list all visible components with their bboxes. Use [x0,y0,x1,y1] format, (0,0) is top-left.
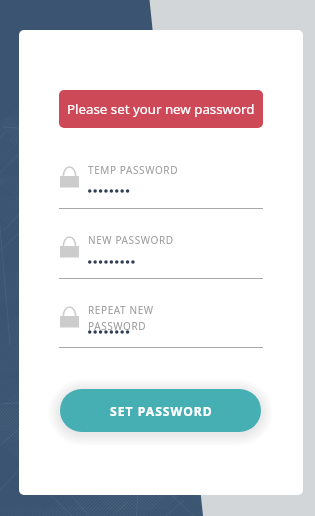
button[interactable]: Please set your new password [59,90,263,128]
button[interactable]: SET PASSWORD [60,389,261,432]
staticText: TEMP PASSWORD [88,163,179,177]
staticText: NEW PASSWORD [88,233,174,247]
staticText: SET PASSWORD [110,403,213,420]
staticText: REPEAT NEW PASSWORD [88,303,154,332]
staticText: Please set your new password [67,100,255,118]
